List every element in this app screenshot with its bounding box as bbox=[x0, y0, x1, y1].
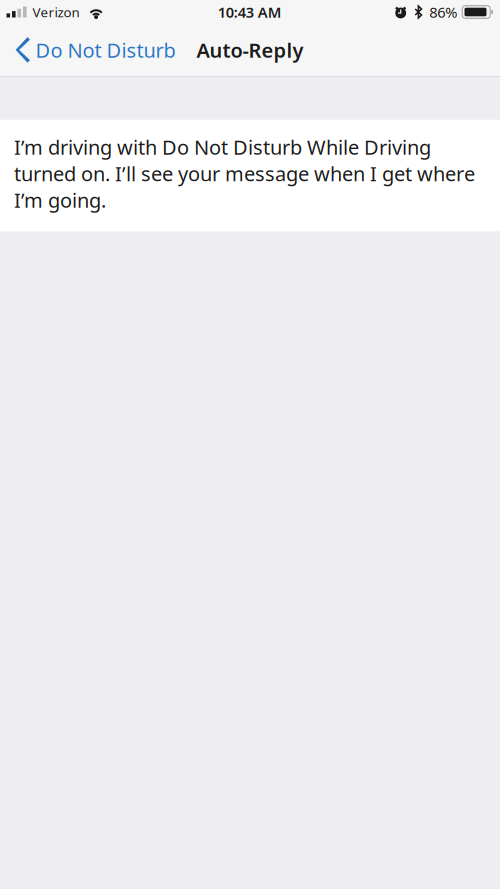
staticText: I’m driving with Do Not Disturb While Dr… bbox=[14, 134, 475, 213]
staticText: Do Not Disturb bbox=[36, 37, 176, 63]
staticText: Verizon bbox=[32, 3, 79, 21]
staticText: 86% bbox=[429, 2, 457, 22]
button[interactable]: I’m driving with Do Not Disturb While Dr… bbox=[0, 120, 500, 231]
staticText: 10:43 AM bbox=[218, 2, 282, 22]
staticText: Auto-Reply bbox=[197, 37, 304, 63]
button[interactable]: Do Not Disturb bbox=[0, 24, 184, 76]
